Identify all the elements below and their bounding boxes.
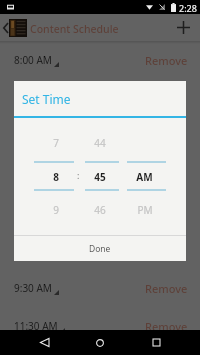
- button[interactable]: Home: [86, 330, 113, 355]
- button[interactable]: 11:30 AM: [0, 312, 200, 340]
- staticText: AM: [136, 170, 153, 184]
- staticText: 8: [53, 170, 59, 184]
- staticText: 7: [53, 136, 59, 150]
- staticText: 8:00 AM: [14, 53, 52, 67]
- staticText: Set Time: [22, 91, 71, 107]
- staticText: Remove: [145, 319, 188, 334]
- staticText: 11:30 AM: [14, 319, 58, 333]
- button[interactable]: Add: [170, 14, 195, 41]
- staticText: Done: [89, 243, 111, 255]
- staticText: 2:28: [179, 2, 197, 14]
- button[interactable]: Done: [14, 236, 186, 261]
- button[interactable]: 7: [34, 117, 74, 237]
- staticText: 45: [94, 170, 106, 184]
- button[interactable]: 9:30 AM: [0, 274, 200, 302]
- button[interactable]: AM: [127, 117, 166, 237]
- staticText: 9: [53, 203, 59, 217]
- button[interactable]: 8:00 AM: [0, 46, 200, 74]
- staticText: Content Schedule: [30, 22, 119, 36]
- button[interactable]: Back: [31, 330, 58, 355]
- staticText: Remove: [145, 281, 188, 296]
- button[interactable]: Recent apps: [143, 330, 170, 355]
- button[interactable]: 44: [85, 117, 119, 237]
- staticText: :: [77, 169, 80, 181]
- staticText: Remove: [145, 53, 188, 68]
- staticText: 46: [94, 203, 106, 217]
- staticText: PM: [137, 203, 153, 217]
- staticText: 9:30 AM: [14, 281, 52, 295]
- button[interactable]: Navigate up: [0, 14, 11, 41]
- staticText: 44: [94, 136, 106, 150]
